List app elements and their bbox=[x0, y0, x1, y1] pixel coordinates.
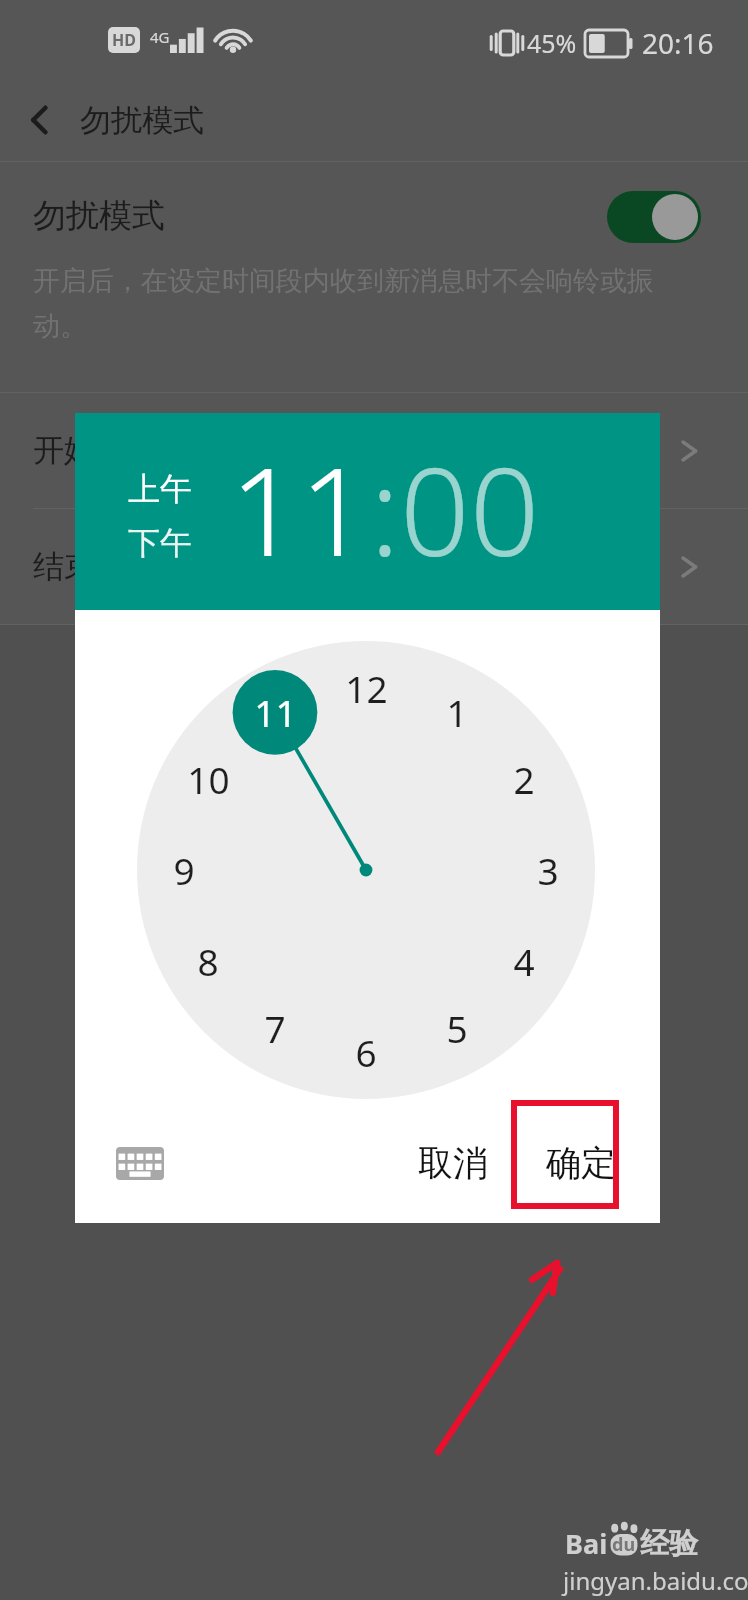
button[interactable]: 上午 bbox=[128, 469, 192, 509]
staticText: HD bbox=[112, 29, 136, 51]
button[interactable]: 4 bbox=[490, 927, 558, 995]
staticText: 11 bbox=[230, 426, 370, 592]
staticText: 5 bbox=[446, 1003, 468, 1053]
staticText: 1 bbox=[446, 687, 468, 737]
staticText: 7 bbox=[264, 1003, 286, 1053]
staticText: 6 bbox=[355, 1027, 377, 1077]
button[interactable]: 9 bbox=[150, 836, 218, 904]
button[interactable]: 12 bbox=[332, 654, 400, 722]
button[interactable]: Back bbox=[0, 80, 80, 160]
button[interactable]: 5 bbox=[423, 994, 491, 1062]
button[interactable]: 6 bbox=[332, 1018, 400, 1086]
staticText: 经验 bbox=[640, 1525, 698, 1562]
staticText: 9 bbox=[173, 845, 195, 895]
staticText: du bbox=[612, 1532, 636, 1557]
staticText: 8 bbox=[197, 936, 219, 986]
staticText: jingyan.baidu.com bbox=[563, 1564, 748, 1597]
button[interactable]: 取消 bbox=[388, 1112, 518, 1214]
button[interactable]: 下午 bbox=[128, 523, 192, 563]
staticText: 开启后，在设定时间段内收到新消息时不会响铃或振 动。 bbox=[33, 264, 713, 343]
button[interactable]: 确定 bbox=[517, 1112, 645, 1214]
staticText: 上午 bbox=[128, 469, 192, 509]
staticText: 11 bbox=[254, 687, 297, 737]
button[interactable]: 8 bbox=[174, 927, 242, 995]
button[interactable]: 10 bbox=[174, 745, 242, 813]
staticText: 勿扰模式 bbox=[80, 101, 204, 140]
staticText: 00 bbox=[400, 426, 540, 592]
staticText: 勿扰模式 bbox=[33, 195, 165, 237]
staticText: 3 bbox=[537, 845, 559, 895]
button[interactable]: 1 bbox=[423, 678, 491, 746]
staticText: 4G bbox=[150, 27, 170, 47]
staticText: 2 bbox=[513, 754, 535, 804]
button[interactable]: 结束时间 bbox=[0, 509, 748, 624]
staticText: 20:16 bbox=[642, 24, 714, 62]
button[interactable]: 3 bbox=[514, 836, 582, 904]
button[interactable]: 00 bbox=[400, 426, 540, 592]
staticText: : bbox=[370, 426, 400, 592]
staticText: 结束时间 bbox=[33, 547, 157, 586]
staticText: 下午 bbox=[128, 523, 192, 563]
staticText: 4 bbox=[513, 936, 535, 986]
button[interactable]: 11 bbox=[241, 678, 309, 746]
staticText: 取消 bbox=[418, 1141, 488, 1185]
staticText: 45% bbox=[527, 26, 577, 60]
staticText: Bai bbox=[565, 1525, 608, 1562]
button[interactable] bbox=[607, 191, 701, 243]
staticText: 确定 bbox=[546, 1141, 616, 1185]
button[interactable]: 7 bbox=[241, 994, 309, 1062]
button[interactable]: 2 bbox=[490, 745, 558, 813]
button[interactable]: Switch to keyboard input bbox=[102, 1125, 178, 1201]
staticText: 开始时间 bbox=[33, 431, 157, 470]
button[interactable]: 开始时间 bbox=[0, 393, 748, 508]
button[interactable]: 勿扰模式 bbox=[0, 162, 748, 387]
button[interactable]: 11 bbox=[230, 426, 370, 592]
staticText: 12 bbox=[345, 663, 388, 713]
staticText: 10 bbox=[187, 754, 230, 804]
